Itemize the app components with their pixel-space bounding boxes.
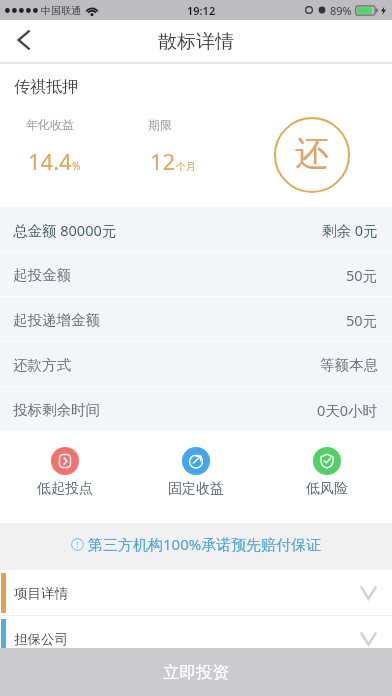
staticText: 投标剩余时间 (13, 401, 100, 419)
staticText: 中国联通 (41, 4, 81, 17)
staticText: 项目详情 (14, 585, 68, 602)
button[interactable]: 固定收益 (130, 432, 261, 523)
staticText: 等额本息 (320, 356, 378, 374)
staticText: 50元 (346, 310, 378, 330)
staticText: 年化收益 (26, 117, 74, 132)
staticText: 传祺抵押 (14, 77, 78, 97)
staticText: 起投递增金额 (13, 311, 100, 329)
button[interactable]: 项目详情 (0, 570, 392, 616)
staticText: 还款方式 (13, 356, 71, 374)
staticText: 担保公司 (14, 631, 68, 648)
staticText: 个月 (176, 160, 196, 173)
staticText: 第三方机构100%承诺预先赔付保证 (88, 534, 322, 554)
staticText: % (72, 159, 81, 173)
button[interactable]: 担保公司 (0, 616, 392, 662)
staticText: 14.4 (28, 146, 72, 176)
staticText: 0天0小时 (317, 400, 378, 420)
staticText: 还 (295, 132, 329, 175)
staticText: 总金额 80000元 (13, 220, 117, 240)
staticText: 立即投资 (163, 662, 229, 683)
staticText: 剩余 0元 (322, 220, 378, 240)
staticText: 低风险 (306, 480, 348, 498)
staticText: 50元 (346, 265, 378, 285)
staticText: 19:12 (187, 3, 216, 18)
staticText: 期限 (148, 117, 172, 132)
button[interactable]: 立即投资 (0, 648, 392, 696)
button[interactable]: 低风险 (261, 432, 392, 523)
staticText: 89% (330, 3, 352, 18)
staticText: 12 (150, 146, 176, 176)
button[interactable]: Back (0, 20, 48, 64)
staticText: 固定收益 (168, 480, 224, 498)
staticText: 散标详情 (158, 30, 234, 54)
staticText: 起投金额 (13, 266, 71, 284)
staticText: 低起投点 (37, 480, 93, 498)
button[interactable]: 低起投点 (0, 432, 130, 523)
